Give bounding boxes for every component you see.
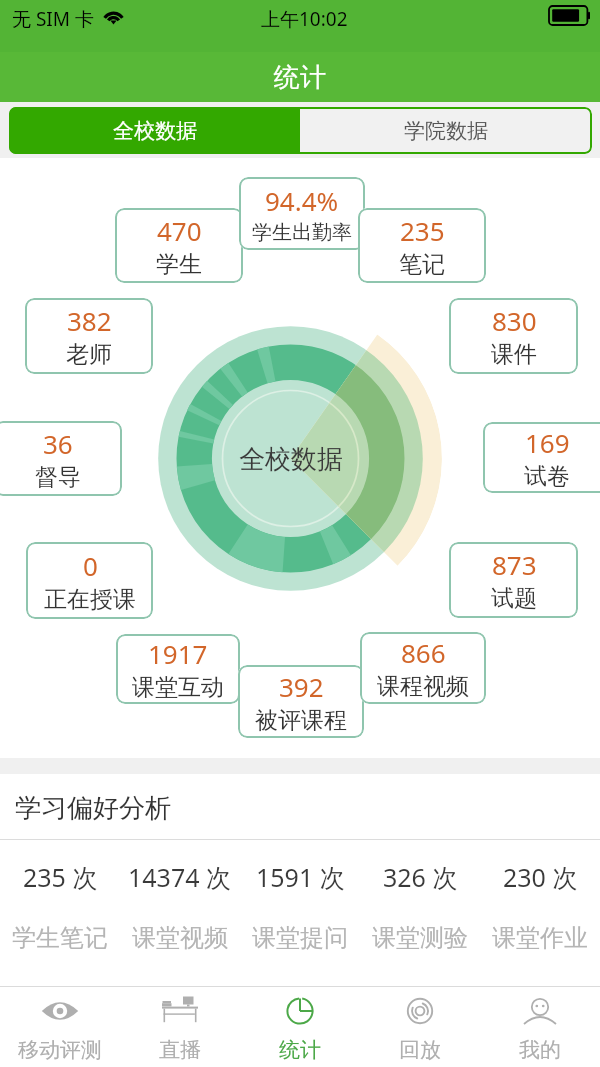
staticText: 学院数据 <box>404 118 488 144</box>
button[interactable]: 392 <box>238 665 364 738</box>
staticText: 课堂作业 <box>492 923 588 953</box>
button[interactable]: 1917 <box>116 634 240 704</box>
button[interactable]: 全校数据 <box>9 107 300 154</box>
staticText: 笔记 <box>399 250 445 279</box>
staticText: 873 <box>492 547 537 582</box>
staticText: 移动评测 <box>18 1037 102 1063</box>
staticText: 试题 <box>491 584 537 613</box>
staticText: 直播 <box>159 1037 201 1063</box>
staticText: 169 <box>525 425 570 460</box>
staticText: 学生笔记 <box>12 923 108 953</box>
staticText: 0 <box>83 548 98 583</box>
staticText: 326 次 <box>383 860 458 894</box>
button[interactable]: 382 <box>25 298 153 374</box>
staticText: 试卷 <box>524 462 570 491</box>
staticText: 235 次 <box>23 860 98 894</box>
staticText: 全校数据 <box>113 118 197 144</box>
staticText: 统计 <box>279 1037 321 1063</box>
staticText: 14374 次 <box>128 860 232 894</box>
staticText: 392 <box>279 669 324 704</box>
staticText: 课堂测验 <box>372 923 468 953</box>
staticText: 1591 次 <box>256 860 345 894</box>
staticText: 被评课程 <box>255 706 347 735</box>
staticText: 老师 <box>66 340 112 369</box>
staticText: 督导 <box>35 463 81 492</box>
staticText: 课件 <box>491 340 537 369</box>
staticText: 学生出勤率 <box>252 220 352 245</box>
staticText: 382 <box>67 303 112 338</box>
staticText: 学习偏好分析 <box>15 792 171 825</box>
button[interactable]: 235 <box>358 208 486 283</box>
staticText: 1917 <box>148 636 208 671</box>
staticText: 我的 <box>519 1037 561 1063</box>
button[interactable]: 873 <box>449 542 578 618</box>
staticText: 课堂互动 <box>132 673 224 702</box>
staticText: 94.4% <box>265 183 339 218</box>
staticText: 36 <box>43 426 73 461</box>
staticText: 上午10:02 <box>261 6 348 32</box>
button[interactable]: 我的 <box>480 987 600 1067</box>
button[interactable]: 0 <box>26 542 153 619</box>
staticText: 866 <box>401 635 446 670</box>
staticText: 全校数据 <box>239 443 343 476</box>
staticText: 235 <box>400 213 445 248</box>
button[interactable]: 866 <box>360 632 486 704</box>
staticText: 830 <box>492 303 537 338</box>
staticText: 回放 <box>399 1037 441 1063</box>
button[interactable]: 统计 <box>240 987 360 1067</box>
staticText: 课程视频 <box>377 672 469 701</box>
button[interactable]: 直播 <box>120 987 240 1067</box>
staticText: 学生 <box>156 250 202 279</box>
button[interactable]: 94.4% <box>239 177 365 250</box>
button[interactable]: 830 <box>449 298 578 374</box>
button[interactable]: 36 <box>0 421 122 496</box>
staticText: 正在授课 <box>44 585 136 614</box>
button[interactable]: 470 <box>115 208 243 283</box>
staticText: 统计 <box>274 61 326 94</box>
button[interactable]: 169 <box>483 422 600 493</box>
staticText: 无 SIM 卡 <box>12 6 94 32</box>
button[interactable]: 移动评测 <box>0 987 120 1067</box>
button[interactable]: 学院数据 <box>300 107 592 154</box>
staticText: 230 次 <box>503 860 578 894</box>
staticText: 课堂提问 <box>252 923 348 953</box>
button[interactable]: 回放 <box>360 987 480 1067</box>
staticText: 470 <box>157 213 202 248</box>
staticText: 课堂视频 <box>132 923 228 953</box>
